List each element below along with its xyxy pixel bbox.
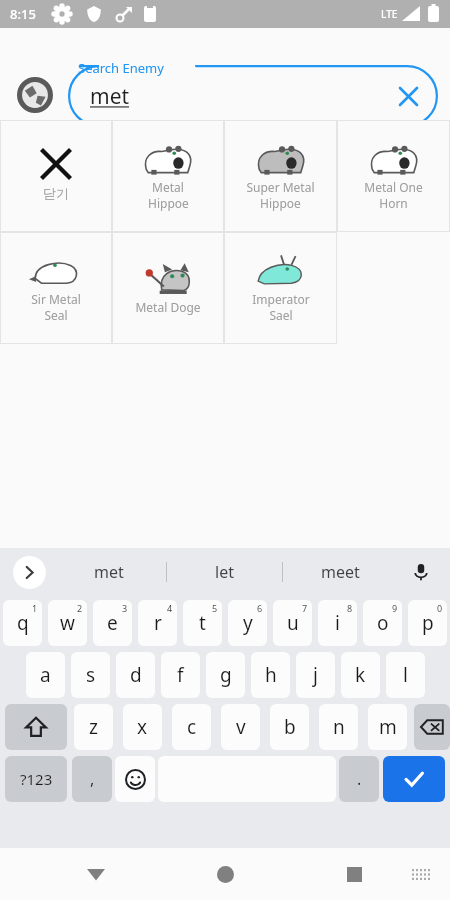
button[interactable]: meet bbox=[283, 548, 398, 596]
staticText: 3 bbox=[122, 602, 128, 614]
staticText: 7 bbox=[302, 602, 308, 614]
button[interactable]: d bbox=[116, 652, 155, 698]
staticText: l bbox=[403, 662, 408, 688]
button[interactable]: 닫기 bbox=[0, 120, 112, 232]
button[interactable]: Sir Metal bbox=[0, 232, 112, 344]
button[interactable]: Home bbox=[207, 856, 243, 892]
button[interactable]: y bbox=[228, 600, 267, 646]
staticText: b bbox=[284, 714, 296, 740]
button[interactable]: s bbox=[71, 652, 110, 698]
button[interactable]: Metal One bbox=[337, 120, 450, 232]
button[interactable]: Imperator bbox=[224, 232, 337, 344]
button[interactable]: Back bbox=[78, 856, 114, 892]
button[interactable]: met bbox=[68, 65, 438, 127]
button[interactable]: let bbox=[167, 548, 282, 596]
staticText: a bbox=[40, 662, 51, 688]
staticText: met bbox=[90, 82, 130, 111]
button[interactable]: Clear text bbox=[392, 80, 424, 112]
button[interactable]: t bbox=[183, 600, 222, 646]
staticText: 9 bbox=[392, 602, 398, 614]
staticText: 0 bbox=[437, 602, 443, 614]
button[interactable]: l bbox=[386, 652, 425, 698]
staticText: k bbox=[355, 662, 366, 688]
staticText: x bbox=[137, 714, 148, 740]
staticText: Imperator bbox=[252, 291, 310, 307]
button[interactable]: p bbox=[408, 600, 447, 646]
button[interactable]: ?123 bbox=[5, 756, 67, 802]
button[interactable]: v bbox=[221, 704, 260, 750]
staticText: . bbox=[357, 768, 362, 790]
button[interactable]: Enter bbox=[383, 756, 445, 802]
staticText: LTE bbox=[381, 7, 398, 21]
staticText: y bbox=[243, 610, 253, 636]
staticText: r bbox=[154, 610, 162, 636]
staticText: g bbox=[220, 662, 232, 688]
staticText: Sael bbox=[269, 307, 293, 323]
staticText: Horn bbox=[379, 195, 408, 211]
button[interactable]: u bbox=[273, 600, 312, 646]
button[interactable]: k bbox=[341, 652, 380, 698]
button[interactable]: q bbox=[3, 600, 42, 646]
button[interactable]: Voice input bbox=[406, 557, 436, 587]
staticText: ?123 bbox=[20, 769, 53, 789]
button[interactable]: g bbox=[206, 652, 245, 698]
staticText: m bbox=[379, 714, 397, 740]
staticText: n bbox=[333, 714, 345, 740]
staticText: Seal bbox=[44, 307, 68, 323]
staticText: Super Metal bbox=[246, 179, 315, 195]
staticText: , bbox=[90, 768, 95, 790]
staticText: 6 bbox=[257, 602, 263, 614]
staticText: Hippoe bbox=[148, 195, 189, 211]
button[interactable]: b bbox=[270, 704, 309, 750]
staticText: i bbox=[335, 610, 340, 636]
button[interactable]: . bbox=[339, 756, 379, 802]
staticText: Metal bbox=[152, 179, 184, 195]
button[interactable]: More suggestions bbox=[13, 556, 46, 589]
button[interactable]: x bbox=[123, 704, 162, 750]
staticText: let bbox=[215, 561, 234, 583]
button[interactable]: a bbox=[26, 652, 65, 698]
staticText: 1 bbox=[32, 602, 38, 614]
staticText: f bbox=[177, 662, 184, 688]
button[interactable]: Shift bbox=[5, 704, 67, 750]
staticText: o bbox=[377, 610, 389, 636]
button[interactable]: z bbox=[74, 704, 113, 750]
staticText: 4 bbox=[167, 602, 173, 614]
staticText: 8 bbox=[347, 602, 353, 614]
button[interactable]: , bbox=[72, 756, 112, 802]
button[interactable]: h bbox=[251, 652, 290, 698]
button[interactable]: Backspace bbox=[414, 704, 450, 750]
button[interactable]: Emoji bbox=[115, 756, 155, 802]
staticText: 닫기 bbox=[43, 185, 69, 201]
staticText: j bbox=[313, 662, 318, 688]
staticText: h bbox=[265, 662, 277, 688]
staticText: p bbox=[422, 610, 434, 636]
button[interactable]: Super Metal bbox=[224, 120, 337, 232]
button[interactable]: Switch keyboard bbox=[406, 859, 436, 889]
staticText: w bbox=[60, 610, 75, 636]
button[interactable]: met bbox=[52, 548, 166, 596]
button[interactable]: m bbox=[368, 704, 407, 750]
staticText: e bbox=[107, 610, 118, 636]
button[interactable]: r bbox=[138, 600, 177, 646]
button[interactable]: e bbox=[93, 600, 132, 646]
button[interactable]: Recent apps bbox=[336, 856, 372, 892]
staticText: c bbox=[187, 714, 197, 740]
button[interactable]: i bbox=[318, 600, 357, 646]
staticText: d bbox=[130, 662, 142, 688]
button[interactable]: f bbox=[161, 652, 200, 698]
button[interactable]: Metal Doge bbox=[112, 232, 224, 344]
staticText: 8:15 bbox=[10, 5, 36, 23]
button[interactable]: n bbox=[319, 704, 358, 750]
button[interactable]: j bbox=[296, 652, 335, 698]
staticText: Metal Doge bbox=[135, 299, 201, 315]
staticText: 2 bbox=[77, 602, 83, 614]
staticText: Hippoe bbox=[260, 195, 301, 211]
button[interactable]: Metal bbox=[112, 120, 224, 232]
staticText: Sir Metal bbox=[31, 291, 81, 307]
button[interactable]: o bbox=[363, 600, 402, 646]
button[interactable]: Change language bbox=[18, 78, 52, 112]
button[interactable]: c bbox=[172, 704, 211, 750]
button[interactable]: w bbox=[48, 600, 87, 646]
